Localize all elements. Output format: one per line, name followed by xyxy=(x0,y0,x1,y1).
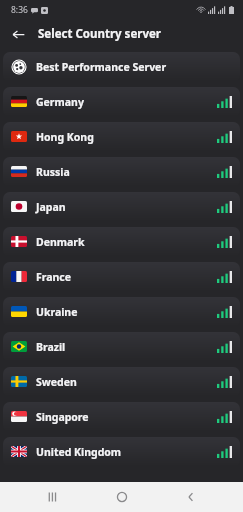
button[interactable]: Japan xyxy=(3,192,240,221)
staticText: Brazil xyxy=(36,340,66,354)
button[interactable]: Hong Kong xyxy=(3,122,240,151)
button[interactable]: Singapore xyxy=(3,402,240,431)
button[interactable]: Brazil xyxy=(3,332,240,361)
button[interactable]: Sweden xyxy=(3,367,240,396)
staticText: Russia xyxy=(36,165,70,179)
staticText: Denmark xyxy=(36,235,85,249)
button[interactable]: United Kingdom xyxy=(3,437,240,466)
button[interactable]: Home xyxy=(105,482,139,512)
staticText: Best Performance Server xyxy=(36,60,167,74)
staticText: Select Country server xyxy=(38,26,161,42)
staticText: Singapore xyxy=(36,410,89,424)
staticText: Germany xyxy=(36,95,84,109)
button[interactable]: Denmark xyxy=(3,227,240,256)
button[interactable]: Germany xyxy=(3,87,240,116)
button[interactable]: Russia xyxy=(3,157,240,186)
staticText: Japan xyxy=(36,200,66,214)
button[interactable]: France xyxy=(3,262,240,291)
staticText: Hong Kong xyxy=(36,130,94,144)
button[interactable]: Ukraine xyxy=(3,297,240,326)
staticText: France xyxy=(36,270,72,284)
button[interactable]: Back xyxy=(174,482,208,512)
staticText: 8:36 xyxy=(11,4,28,16)
button[interactable]: Back xyxy=(7,23,29,45)
staticText: Ukraine xyxy=(36,305,78,319)
button[interactable]: Recents xyxy=(35,482,69,512)
staticText: Sweden xyxy=(36,375,77,389)
button[interactable]: Best Performance Server xyxy=(3,52,240,81)
staticText: United Kingdom xyxy=(36,445,122,459)
